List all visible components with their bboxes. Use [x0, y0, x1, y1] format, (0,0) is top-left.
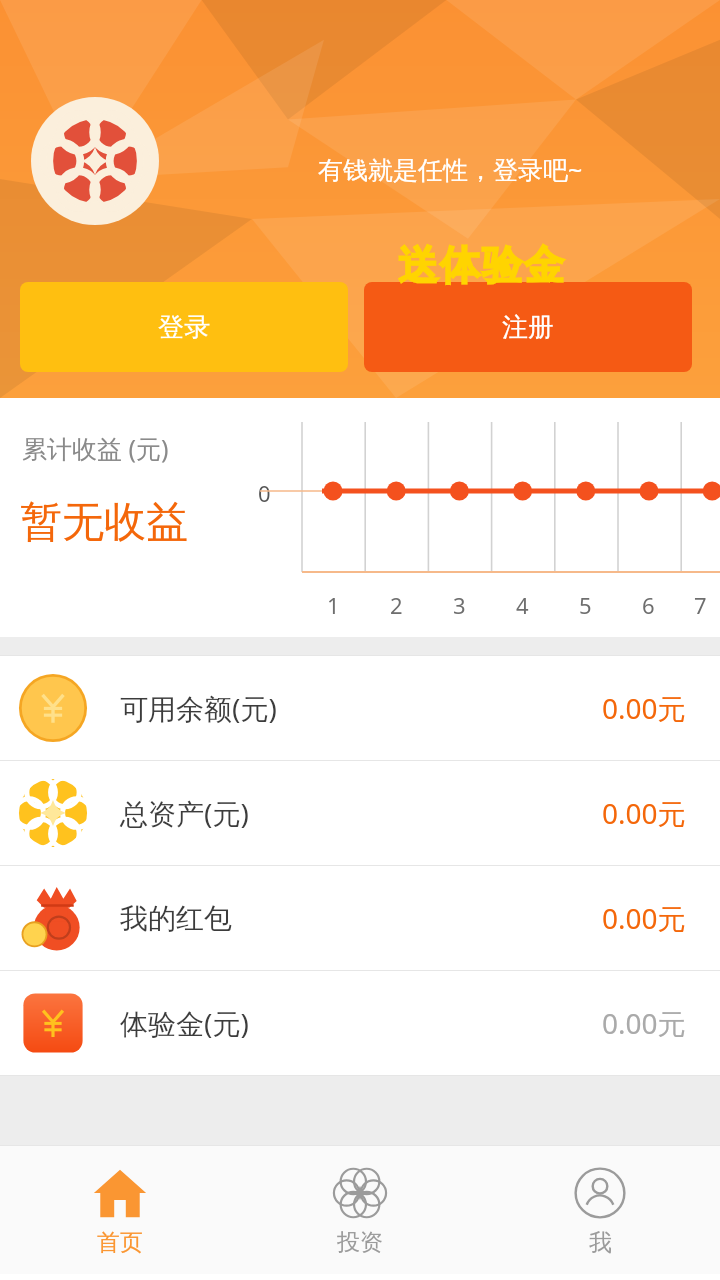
staticText: 6: [642, 590, 655, 620]
staticText: 投资: [337, 1228, 383, 1257]
staticText: 累计收益 (元): [22, 431, 169, 465]
staticText: 7: [694, 590, 707, 620]
staticText: 0.00元: [602, 794, 686, 832]
staticText: 首页: [97, 1228, 143, 1257]
staticText: 0.00元: [602, 1004, 686, 1042]
staticText: 体验金(元): [120, 1004, 249, 1042]
staticText: 总资产(元): [120, 794, 249, 832]
staticText: 0.00元: [602, 689, 686, 727]
button[interactable]: 总资产(元): [0, 761, 720, 865]
staticText: 暂无收益: [20, 496, 188, 549]
staticText: 5: [579, 590, 592, 620]
button[interactable]: 注册: [364, 282, 692, 372]
staticText: 4: [516, 590, 529, 620]
staticText: 0: [258, 478, 271, 508]
staticText: 3: [453, 590, 466, 620]
button[interactable]: 登录: [20, 282, 348, 372]
staticText: 送体验金: [397, 240, 565, 290]
button[interactable]: 体验金(元): [0, 971, 720, 1075]
button[interactable]: 首页: [0, 1146, 240, 1274]
staticText: 我: [589, 1228, 612, 1257]
staticText: 登录: [158, 311, 210, 344]
button[interactable]: 投资: [240, 1146, 480, 1274]
staticText: 0.00元: [602, 899, 686, 937]
staticText: 可用余额(元): [120, 689, 277, 727]
staticText: 我的红包: [120, 901, 232, 936]
staticText: 注册: [502, 311, 554, 344]
staticText: 1: [327, 590, 340, 620]
staticText: 有钱就是任性，登录吧~: [318, 152, 583, 186]
button[interactable]: 我: [480, 1146, 720, 1274]
button[interactable]: 我的红包: [0, 866, 720, 970]
button[interactable]: 可用余额(元): [0, 656, 720, 760]
staticText: 2: [390, 590, 403, 620]
